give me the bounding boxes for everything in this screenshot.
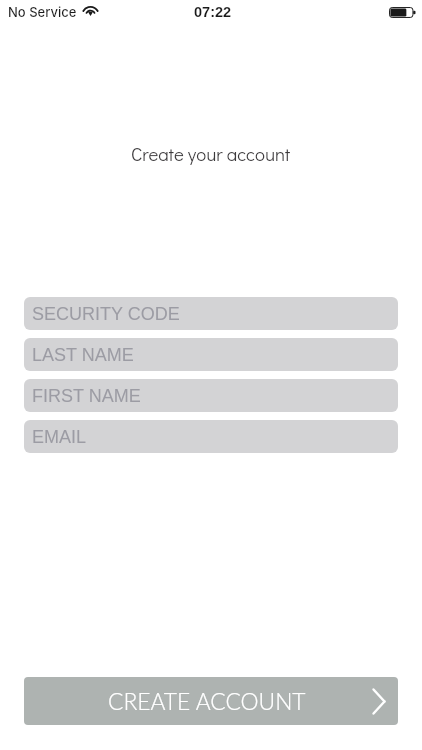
staticText: SECURITY CODE	[32, 304, 180, 324]
staticText: No Service	[8, 4, 77, 20]
other: Continue	[372, 688, 386, 715]
button[interactable]: FIRST NAME	[24, 379, 398, 412]
other: Wi-Fi	[83, 4, 98, 16]
button[interactable]: LAST NAME	[24, 338, 398, 371]
button[interactable]: EMAIL	[24, 420, 398, 453]
staticText: FIRST NAME	[32, 386, 141, 406]
staticText: Create your account	[131, 141, 291, 166]
button[interactable]: CREATE ACCOUNT	[24, 677, 398, 725]
staticText: 07:22	[194, 4, 232, 20]
button[interactable]: SECURITY CODE	[24, 297, 398, 330]
other: Battery 74 percent	[389, 7, 416, 18]
staticText: EMAIL	[32, 427, 87, 447]
staticText: CREATE ACCOUNT	[108, 687, 306, 714]
staticText: LAST NAME	[32, 345, 134, 365]
